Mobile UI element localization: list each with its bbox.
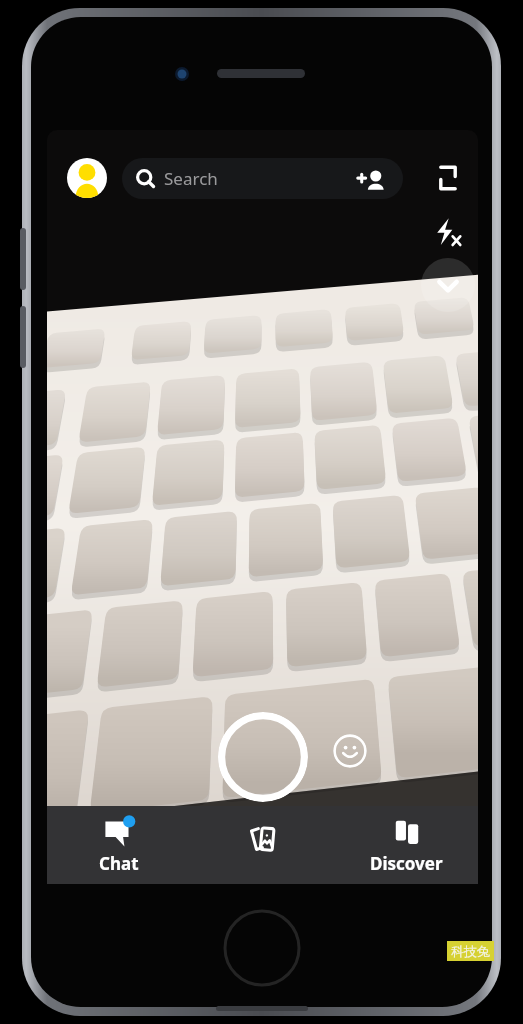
button[interactable]: Discover xyxy=(334,806,478,884)
staticText: Search xyxy=(164,167,218,190)
button[interactable]: Flash off xyxy=(430,214,466,250)
button[interactable]: Flip camera xyxy=(430,160,466,196)
button[interactable]: Capture xyxy=(218,712,308,802)
staticText: Chat xyxy=(99,852,139,875)
button[interactable]: Chat xyxy=(47,806,191,884)
staticText: 科技兔 xyxy=(451,943,490,959)
button[interactable]: Lenses xyxy=(333,734,367,768)
button[interactable]: More options xyxy=(421,258,475,312)
button[interactable]: Search xyxy=(122,158,403,199)
staticText: Discover xyxy=(370,852,443,875)
button[interactable]: Profile xyxy=(67,158,107,198)
button[interactable]: Memories xyxy=(191,806,334,884)
button[interactable]: Add friends xyxy=(352,163,388,199)
